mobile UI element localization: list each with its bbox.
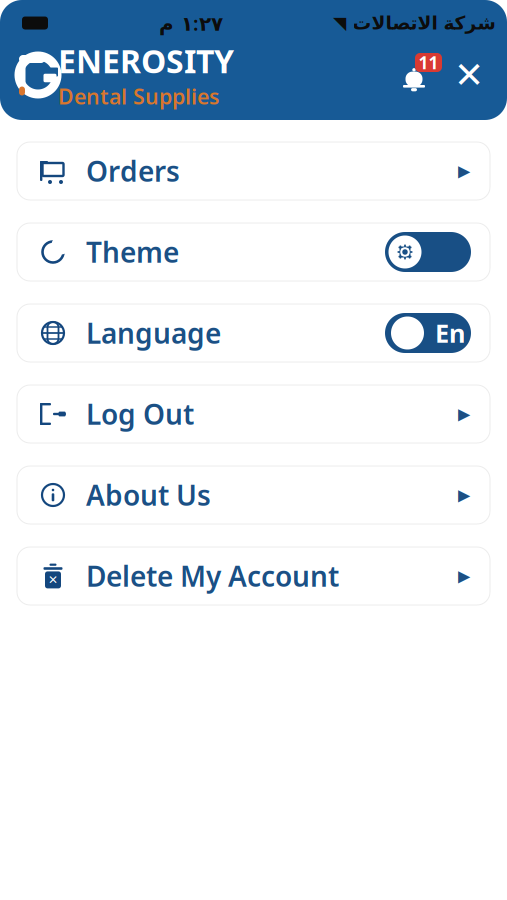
button[interactable]: ✕: [0, 547, 507, 605]
staticText: ✕: [454, 55, 484, 95]
button[interactable]: About Us: [0, 466, 507, 524]
staticText: Dental Supplies: [58, 82, 220, 110]
button[interactable]: Theme toggle: [385, 232, 471, 272]
button[interactable]: Close: [447, 53, 491, 97]
button[interactable]: Notifications: [391, 54, 437, 96]
button[interactable]: Language: [0, 304, 507, 362]
staticText: Theme: [86, 233, 179, 271]
staticText: ١:٢٧ م: [158, 10, 222, 36]
staticText: ◥: [333, 13, 346, 33]
staticText: ▶: [458, 405, 470, 423]
staticText: About Us: [86, 476, 211, 514]
button[interactable]: Orders: [0, 142, 507, 200]
button[interactable]: Log Out: [0, 385, 507, 443]
staticText: ✕: [48, 573, 58, 587]
staticText: Delete My Account: [86, 557, 339, 595]
staticText: ▶: [458, 162, 470, 180]
staticText: شركة الاتصالات: [352, 12, 495, 34]
staticText: Log Out: [86, 395, 194, 433]
staticText: ENEROSITY: [58, 40, 234, 82]
staticText: En: [435, 316, 465, 350]
staticText: 11: [418, 51, 438, 74]
button[interactable]: Language toggle, English: [385, 313, 471, 353]
staticText: ▶: [458, 486, 470, 504]
staticText: Orders: [86, 152, 180, 190]
staticText: ▶: [458, 567, 470, 585]
staticText: Language: [86, 314, 221, 352]
button[interactable]: Theme: [0, 223, 507, 281]
